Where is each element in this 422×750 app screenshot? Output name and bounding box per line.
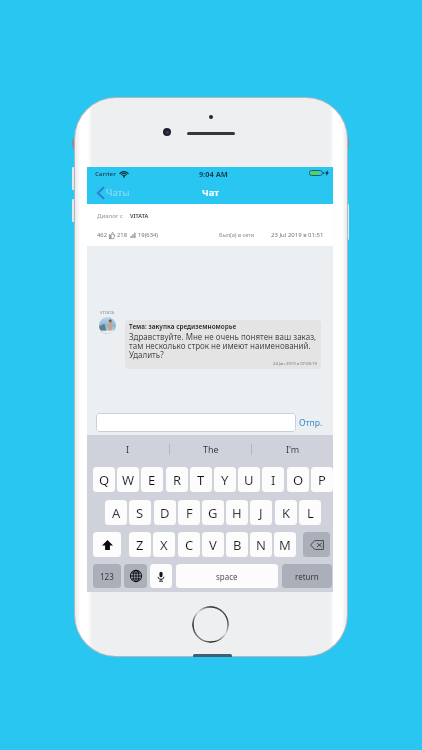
staticText: VITATA xyxy=(100,310,115,316)
button[interactable]: W xyxy=(117,467,139,492)
staticText: VITATA xyxy=(130,212,149,219)
button[interactable]: A xyxy=(105,500,127,525)
staticText: return xyxy=(295,571,319,582)
button[interactable]: K xyxy=(275,500,297,525)
staticText: H xyxy=(232,504,242,522)
button[interactable]: space xyxy=(176,564,278,588)
button[interactable]: C xyxy=(178,532,200,557)
button[interactable]: Shift xyxy=(93,532,121,557)
staticText: T xyxy=(197,471,205,489)
staticText: I xyxy=(271,471,276,489)
staticText: W xyxy=(122,471,135,489)
staticText: O xyxy=(293,471,304,489)
button[interactable]: U xyxy=(238,467,260,492)
button[interactable]: J xyxy=(250,500,272,525)
staticText: I xyxy=(126,443,130,455)
button[interactable]: T xyxy=(190,467,212,492)
staticText: U xyxy=(244,471,254,489)
button[interactable]: I'm xyxy=(252,435,333,463)
staticText: Тема: закупка средиземноморье xyxy=(129,322,237,331)
staticText: C xyxy=(185,536,194,554)
button[interactable]: F xyxy=(178,500,200,525)
staticText: M xyxy=(279,536,291,554)
staticText: B xyxy=(233,536,242,554)
staticText: 218 xyxy=(117,231,127,239)
staticText: J xyxy=(259,504,263,522)
staticText: X xyxy=(160,536,168,554)
button[interactable]: I xyxy=(262,467,284,492)
staticText: V xyxy=(209,536,217,554)
staticText: space xyxy=(216,571,238,582)
button[interactable]: return xyxy=(282,564,332,588)
button[interactable]: H xyxy=(226,500,248,525)
button[interactable]: Home xyxy=(192,606,229,643)
staticText: Здравствуйте. Мне не очень понятен ваш з… xyxy=(129,331,317,361)
button[interactable]: L xyxy=(299,500,321,525)
button[interactable]: G xyxy=(202,500,224,525)
button[interactable]: D xyxy=(154,500,176,525)
button[interactable]: The xyxy=(170,435,251,463)
button[interactable]: Y xyxy=(214,467,236,492)
staticText: 123 xyxy=(100,571,114,582)
staticText: Отпр. xyxy=(299,417,323,429)
staticText: A xyxy=(112,504,121,522)
button[interactable]: P xyxy=(311,467,333,492)
staticText: S xyxy=(136,504,144,522)
button[interactable] xyxy=(96,413,296,432)
staticText: 9:04 AM xyxy=(199,169,228,179)
button[interactable]: Отпр. xyxy=(299,417,323,429)
button[interactable]: VITATA avatar xyxy=(99,317,116,334)
staticText: L xyxy=(307,504,314,522)
button[interactable]: X xyxy=(153,532,175,557)
staticText: G xyxy=(208,504,218,522)
staticText: P xyxy=(318,471,326,489)
staticText: N xyxy=(256,536,266,554)
button[interactable]: V xyxy=(202,532,224,557)
button[interactable]: I xyxy=(87,435,169,463)
button[interactable]: Q xyxy=(93,467,115,492)
button[interactable]: Backspace xyxy=(303,532,330,557)
staticText: 24 Jan 2019 в 07:08:19 xyxy=(273,361,317,367)
button[interactable]: 123 xyxy=(93,564,121,588)
staticText: R xyxy=(173,471,182,489)
button[interactable]: Z xyxy=(129,532,151,557)
staticText: 23 Jul 2019 в 01:51 xyxy=(271,231,324,239)
staticText: Z xyxy=(136,536,144,554)
button[interactable]: N xyxy=(250,532,272,557)
button[interactable]: O xyxy=(287,467,309,492)
staticText: Диалог с xyxy=(97,211,124,219)
staticText: K xyxy=(282,504,291,522)
button[interactable]: Dictation xyxy=(150,564,172,588)
staticText: I'm xyxy=(286,443,300,455)
staticText: 462 xyxy=(97,231,107,239)
button[interactable]: B xyxy=(226,532,248,557)
staticText: 19(634) xyxy=(138,231,159,239)
staticText: The xyxy=(203,443,219,455)
button[interactable]: R xyxy=(166,467,188,492)
button[interactable]: S xyxy=(129,500,151,525)
staticText: Был(а) в сети xyxy=(219,231,255,239)
staticText: Чат xyxy=(202,186,219,199)
staticText: Carrier xyxy=(95,170,116,178)
button[interactable]: Чаты xyxy=(97,186,130,199)
button[interactable]: E xyxy=(141,467,163,492)
staticText: Y xyxy=(221,471,229,489)
button[interactable]: M xyxy=(274,532,296,557)
staticText: F xyxy=(186,504,193,522)
staticText: Чаты xyxy=(106,186,130,199)
button[interactable]: Change keyboard xyxy=(124,564,147,588)
staticText: D xyxy=(160,504,170,522)
staticText: Q xyxy=(99,471,110,489)
staticText: E xyxy=(148,471,156,489)
